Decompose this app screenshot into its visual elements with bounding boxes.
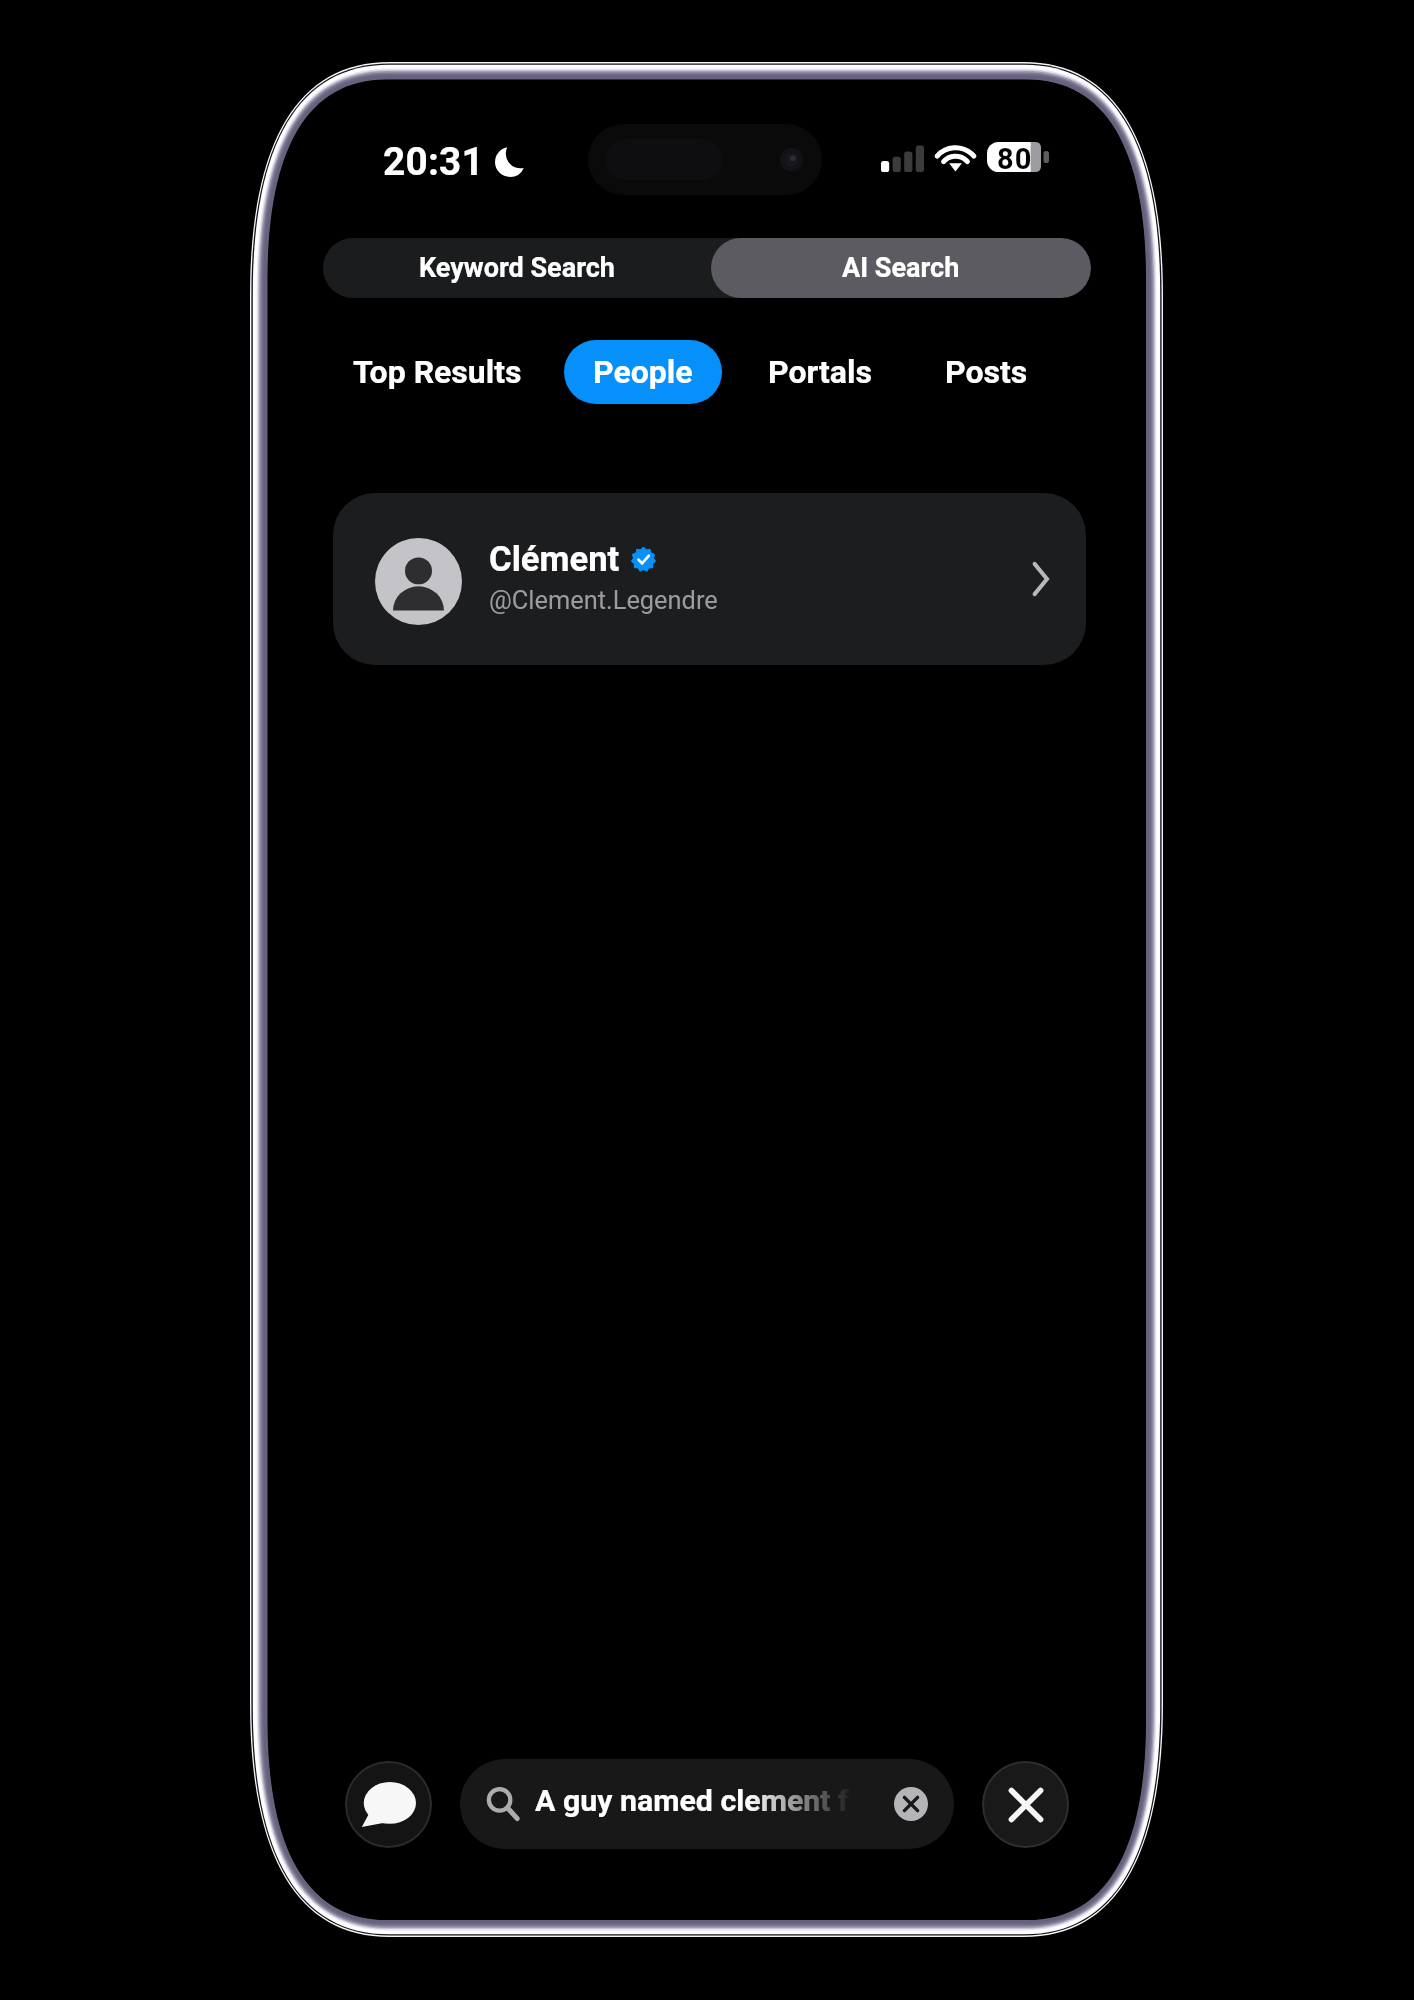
button[interactable]: AI Search [711,238,1091,298]
button[interactable]: Clear text [894,1787,928,1821]
button[interactable]: Keyword Search [323,238,711,298]
staticText: People [593,353,693,391]
button[interactable]: Top Results [339,340,536,404]
button[interactable]: People [564,340,722,404]
button[interactable]: Clément [333,493,1086,665]
staticText: Top Results [353,353,522,391]
staticText: 20:31 [383,139,484,184]
staticText: AI Search [842,252,960,284]
button[interactable]: Chat [345,1761,432,1848]
button[interactable]: Posts [931,340,1042,404]
staticText: @Clement.Legendre [489,585,718,615]
staticText: 80 [997,142,1033,172]
staticText: Portals [768,353,872,391]
staticText: Keyword Search [419,252,615,284]
button[interactable]: Portals [754,340,886,404]
staticText: Posts [945,353,1028,391]
button[interactable]: Close search [982,1761,1069,1848]
staticText: A guy named clement f [535,1783,849,1819]
staticText: Clément [489,539,620,580]
button[interactable]: A guy named clement f [460,1759,954,1849]
